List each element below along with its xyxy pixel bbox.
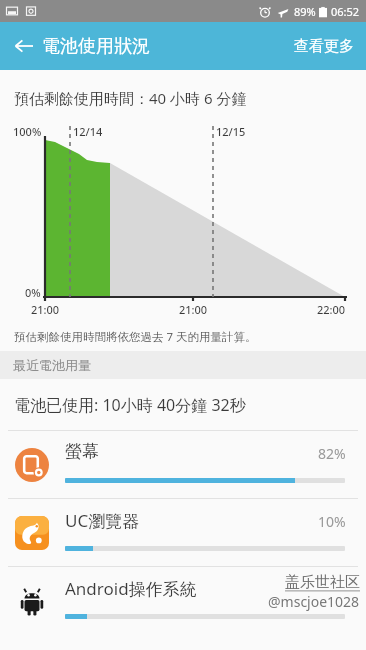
staticText: 查看更多 — [294, 37, 354, 56]
button[interactable]: 查看更多 — [282, 22, 366, 70]
staticText: 10% — [318, 512, 346, 531]
button[interactable]: Back — [0, 22, 48, 70]
staticText: 12/15 — [216, 124, 246, 139]
staticText: 預估剩餘使用時間：40 小時 6 分鐘 — [14, 88, 247, 108]
staticText: 82% — [318, 444, 346, 463]
staticText: 21:00 — [179, 302, 208, 317]
button[interactable]: 電池已使用: 10小時 40分鐘 32秒 — [0, 379, 366, 430]
staticText: 12/14 — [73, 124, 103, 139]
staticText: UC瀏覽器 — [65, 509, 140, 532]
staticText: 預估剩餘使用時間將依您過去 7 天的用量計算。 — [14, 329, 257, 345]
staticText: Android操作系統 — [65, 577, 197, 600]
staticText: 22:00 — [317, 302, 346, 317]
button[interactable]: UC瀏覽器 — [0, 499, 366, 566]
staticText: 螢幕 — [65, 441, 99, 462]
staticText: 電池已使用: 10小時 40分鐘 32秒 — [14, 394, 246, 416]
staticText: 06:52 — [331, 4, 360, 19]
button[interactable]: 螢幕 — [0, 431, 366, 498]
staticText: 電池使用狀況 — [42, 35, 150, 58]
staticText: 21:00 — [31, 302, 60, 317]
staticText: 100% — [13, 124, 42, 139]
staticText: @mscjoe1028 — [268, 592, 360, 611]
staticText: 最近電池用量 — [13, 357, 91, 373]
staticText: 盖乐世社区 — [285, 573, 360, 592]
button[interactable]: Android操作系統 — [0, 567, 366, 634]
staticText: 0% — [25, 285, 41, 300]
staticText: 89% — [294, 4, 316, 19]
